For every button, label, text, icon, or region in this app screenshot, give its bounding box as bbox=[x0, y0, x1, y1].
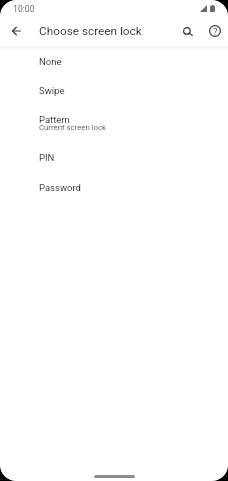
staticText: Current screen lock bbox=[39, 123, 107, 132]
button[interactable]: None bbox=[0, 47, 228, 76]
button[interactable]: Search bbox=[176, 19, 200, 43]
staticText: ? bbox=[213, 26, 218, 37]
staticText: Choose screen lock bbox=[39, 24, 142, 38]
staticText: Swipe bbox=[39, 85, 65, 96]
button[interactable]: PIN bbox=[0, 144, 228, 174]
staticText: PIN bbox=[39, 152, 55, 163]
button[interactable]: Pattern bbox=[0, 105, 228, 144]
staticText: 10:00 bbox=[13, 4, 35, 14]
staticText: Password bbox=[39, 182, 81, 193]
button[interactable]: Swipe bbox=[0, 76, 228, 105]
staticText: None bbox=[39, 56, 62, 67]
button[interactable]: Password bbox=[0, 174, 228, 204]
button[interactable]: Help bbox=[203, 19, 227, 43]
button[interactable]: Back bbox=[4, 19, 28, 43]
staticText: Pattern bbox=[39, 114, 70, 125]
